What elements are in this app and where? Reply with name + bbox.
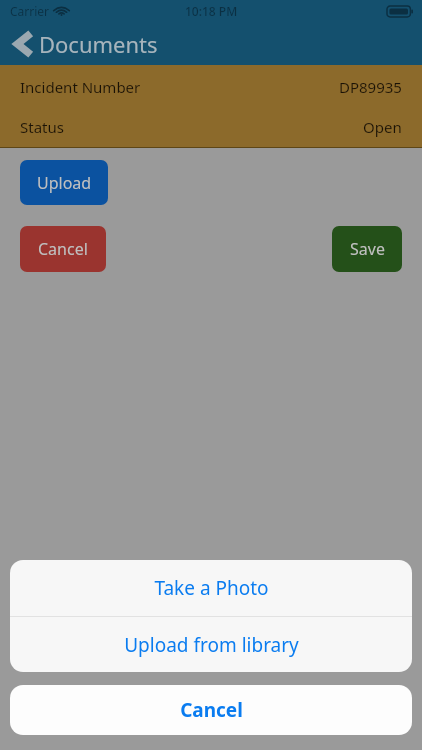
button[interactable]: Upload bbox=[20, 160, 108, 205]
staticText: Status bbox=[20, 117, 64, 137]
button[interactable]: Status bbox=[0, 107, 422, 147]
staticText: Save bbox=[350, 238, 385, 260]
button[interactable]: Incident Number bbox=[0, 67, 422, 107]
staticText: Incident Number bbox=[20, 77, 141, 97]
staticText: Upload from library bbox=[124, 632, 299, 658]
staticText: Cancel bbox=[38, 238, 88, 260]
button[interactable]: Save bbox=[332, 226, 402, 272]
staticText: Take a Photo bbox=[154, 575, 269, 601]
staticText: Open bbox=[363, 117, 402, 137]
staticText: Documents bbox=[39, 29, 158, 59]
button[interactable]: Cancel bbox=[10, 685, 412, 735]
staticText: Carrier bbox=[10, 3, 50, 19]
staticText: Cancel bbox=[180, 697, 243, 723]
staticText: 10:18 PM bbox=[185, 3, 238, 19]
button[interactable]: Upload from library bbox=[10, 617, 412, 672]
button[interactable]: Take a Photo bbox=[10, 560, 412, 616]
staticText: Upload bbox=[37, 172, 92, 194]
button[interactable]: Cancel bbox=[20, 226, 106, 272]
staticText: DP89935 bbox=[339, 77, 402, 97]
button[interactable]: Back bbox=[0, 26, 39, 62]
